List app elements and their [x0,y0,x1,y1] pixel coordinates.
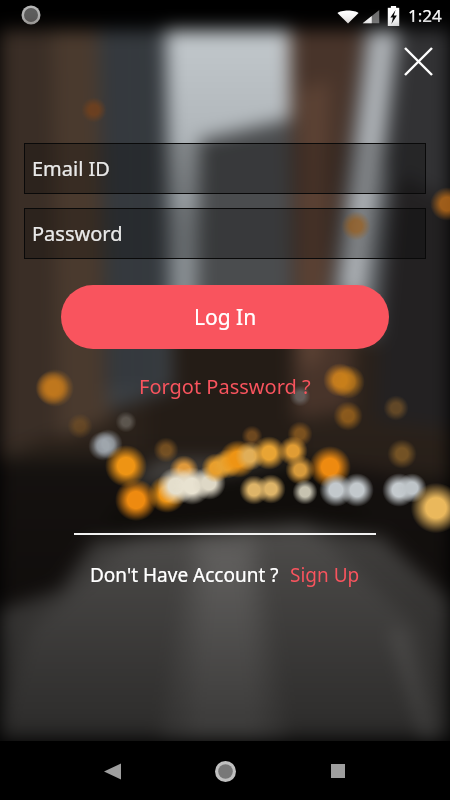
staticText: Don't Have Account ? [90,562,279,588]
staticText: Log In [194,303,257,332]
button[interactable]: Back [88,747,136,795]
staticText: Forgot Password ? [139,373,311,400]
button[interactable]: Forgot Password ? [131,369,319,404]
staticText: Password [32,220,123,247]
button[interactable]: Recents [314,747,362,795]
button[interactable]: Home [201,747,249,795]
button[interactable]: Log In [61,285,389,349]
button[interactable]: Close [394,37,442,85]
button[interactable]: Sign Up [290,562,360,588]
staticText: 1:24 [408,4,442,27]
button[interactable]: Email ID [24,143,426,194]
staticText: Email ID [32,155,110,182]
button[interactable]: Password [24,208,426,259]
staticText: Sign Up [290,562,360,588]
